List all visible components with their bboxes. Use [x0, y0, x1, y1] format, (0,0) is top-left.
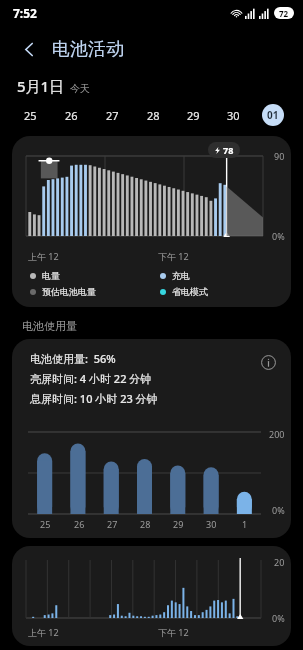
button[interactable]: 30: [213, 100, 253, 130]
button[interactable]: 27: [92, 100, 133, 130]
staticText: 27: [107, 518, 118, 530]
staticText: 29: [173, 518, 184, 530]
staticText: 27: [106, 108, 119, 123]
staticText: 0%: [272, 504, 285, 516]
staticText: 200: [269, 428, 285, 440]
staticText: 5月1日: [17, 76, 65, 96]
staticText: 90: [274, 150, 285, 162]
staticText: 20: [274, 556, 285, 568]
staticText: 25: [40, 518, 51, 530]
staticText: 0%: [272, 612, 285, 624]
staticText: 29: [187, 108, 200, 123]
staticText: 电量: [42, 270, 60, 281]
button[interactable]: Information: [257, 351, 279, 373]
staticText: 息屏时间: 10 小时 23 分钟: [30, 391, 158, 406]
staticText: 1: [242, 518, 248, 530]
staticText: 省电模式: [172, 286, 208, 297]
staticText: 30: [206, 518, 217, 530]
staticText: 上午 12: [28, 250, 59, 262]
button[interactable]: 电池使用量: 56%: [12, 339, 291, 538]
staticText: 充电: [172, 270, 190, 281]
staticText: 26: [74, 518, 85, 530]
staticText: 01: [267, 108, 279, 122]
staticText: 电池使用量: 56%: [30, 351, 116, 366]
button[interactable]: 20: [12, 546, 291, 646]
button[interactable]: 90: [12, 136, 291, 307]
staticText: 72: [279, 8, 289, 19]
staticText: 上午 12: [28, 626, 59, 638]
staticText: 0%: [272, 230, 285, 242]
button[interactable]: 25: [10, 100, 51, 130]
button[interactable]: 26: [51, 100, 92, 130]
staticText: 30: [227, 108, 240, 123]
staticText: 28: [147, 108, 160, 123]
staticText: 电池使用量: [22, 319, 77, 333]
staticText: 亮屏时间: 4 小时 22 分钟: [30, 371, 152, 386]
button[interactable]: 28: [133, 100, 173, 130]
staticText: 26: [65, 108, 78, 123]
staticText: 7:52: [13, 5, 37, 21]
staticText: 今天: [70, 82, 90, 95]
staticText: 预估电池电量: [42, 286, 96, 297]
staticText: 28: [140, 518, 151, 530]
button[interactable]: 29: [173, 100, 213, 130]
staticText: 78: [223, 144, 234, 156]
staticText: 下午 12: [158, 626, 189, 638]
button[interactable]: 01: [253, 100, 293, 130]
staticText: 25: [24, 108, 37, 123]
button[interactable]: Back: [12, 32, 46, 66]
staticText: 电池活动: [52, 38, 124, 61]
staticText: 下午 12: [158, 250, 189, 262]
